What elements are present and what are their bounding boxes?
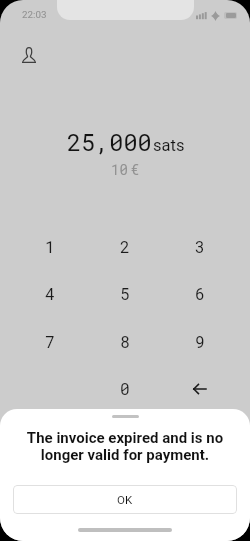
staticText: 8 bbox=[120, 331, 130, 352]
staticText: 5 bbox=[120, 283, 130, 304]
staticText: 1 bbox=[45, 236, 55, 257]
other: Backspace bbox=[193, 384, 206, 394]
staticText: 2 bbox=[120, 236, 130, 257]
staticText: sats bbox=[153, 136, 185, 155]
staticText: 9 bbox=[195, 331, 205, 352]
button[interactable]: 3 bbox=[162, 223, 237, 270]
button[interactable]: OK bbox=[13, 485, 237, 514]
staticText: € bbox=[131, 162, 139, 178]
staticText: 4 bbox=[45, 283, 55, 304]
button[interactable]: 7 bbox=[13, 318, 87, 365]
staticText: 7 bbox=[45, 331, 55, 352]
button[interactable]: 0 bbox=[87, 365, 162, 412]
staticText: The invoice expired and is no longer val… bbox=[20, 429, 230, 463]
button[interactable]: 6 bbox=[162, 270, 237, 317]
staticText: 3 bbox=[195, 236, 205, 257]
button[interactable]: 2 bbox=[87, 223, 162, 270]
button[interactable]: 4 bbox=[13, 270, 87, 317]
button[interactable]: Backspace bbox=[162, 365, 237, 412]
staticText: 6 bbox=[195, 283, 205, 304]
staticText: 25,000 bbox=[67, 126, 152, 157]
staticText: 22:03 bbox=[22, 9, 47, 20]
button[interactable]: 5 bbox=[87, 270, 162, 317]
button[interactable]: 8 bbox=[87, 318, 162, 365]
button[interactable]: Profile bbox=[16, 42, 42, 68]
button[interactable]: 9 bbox=[162, 318, 237, 365]
staticText: 0 bbox=[120, 378, 130, 399]
staticText: OK bbox=[117, 493, 133, 506]
button[interactable]: 1 bbox=[13, 223, 87, 270]
staticText: 10 bbox=[111, 160, 128, 178]
